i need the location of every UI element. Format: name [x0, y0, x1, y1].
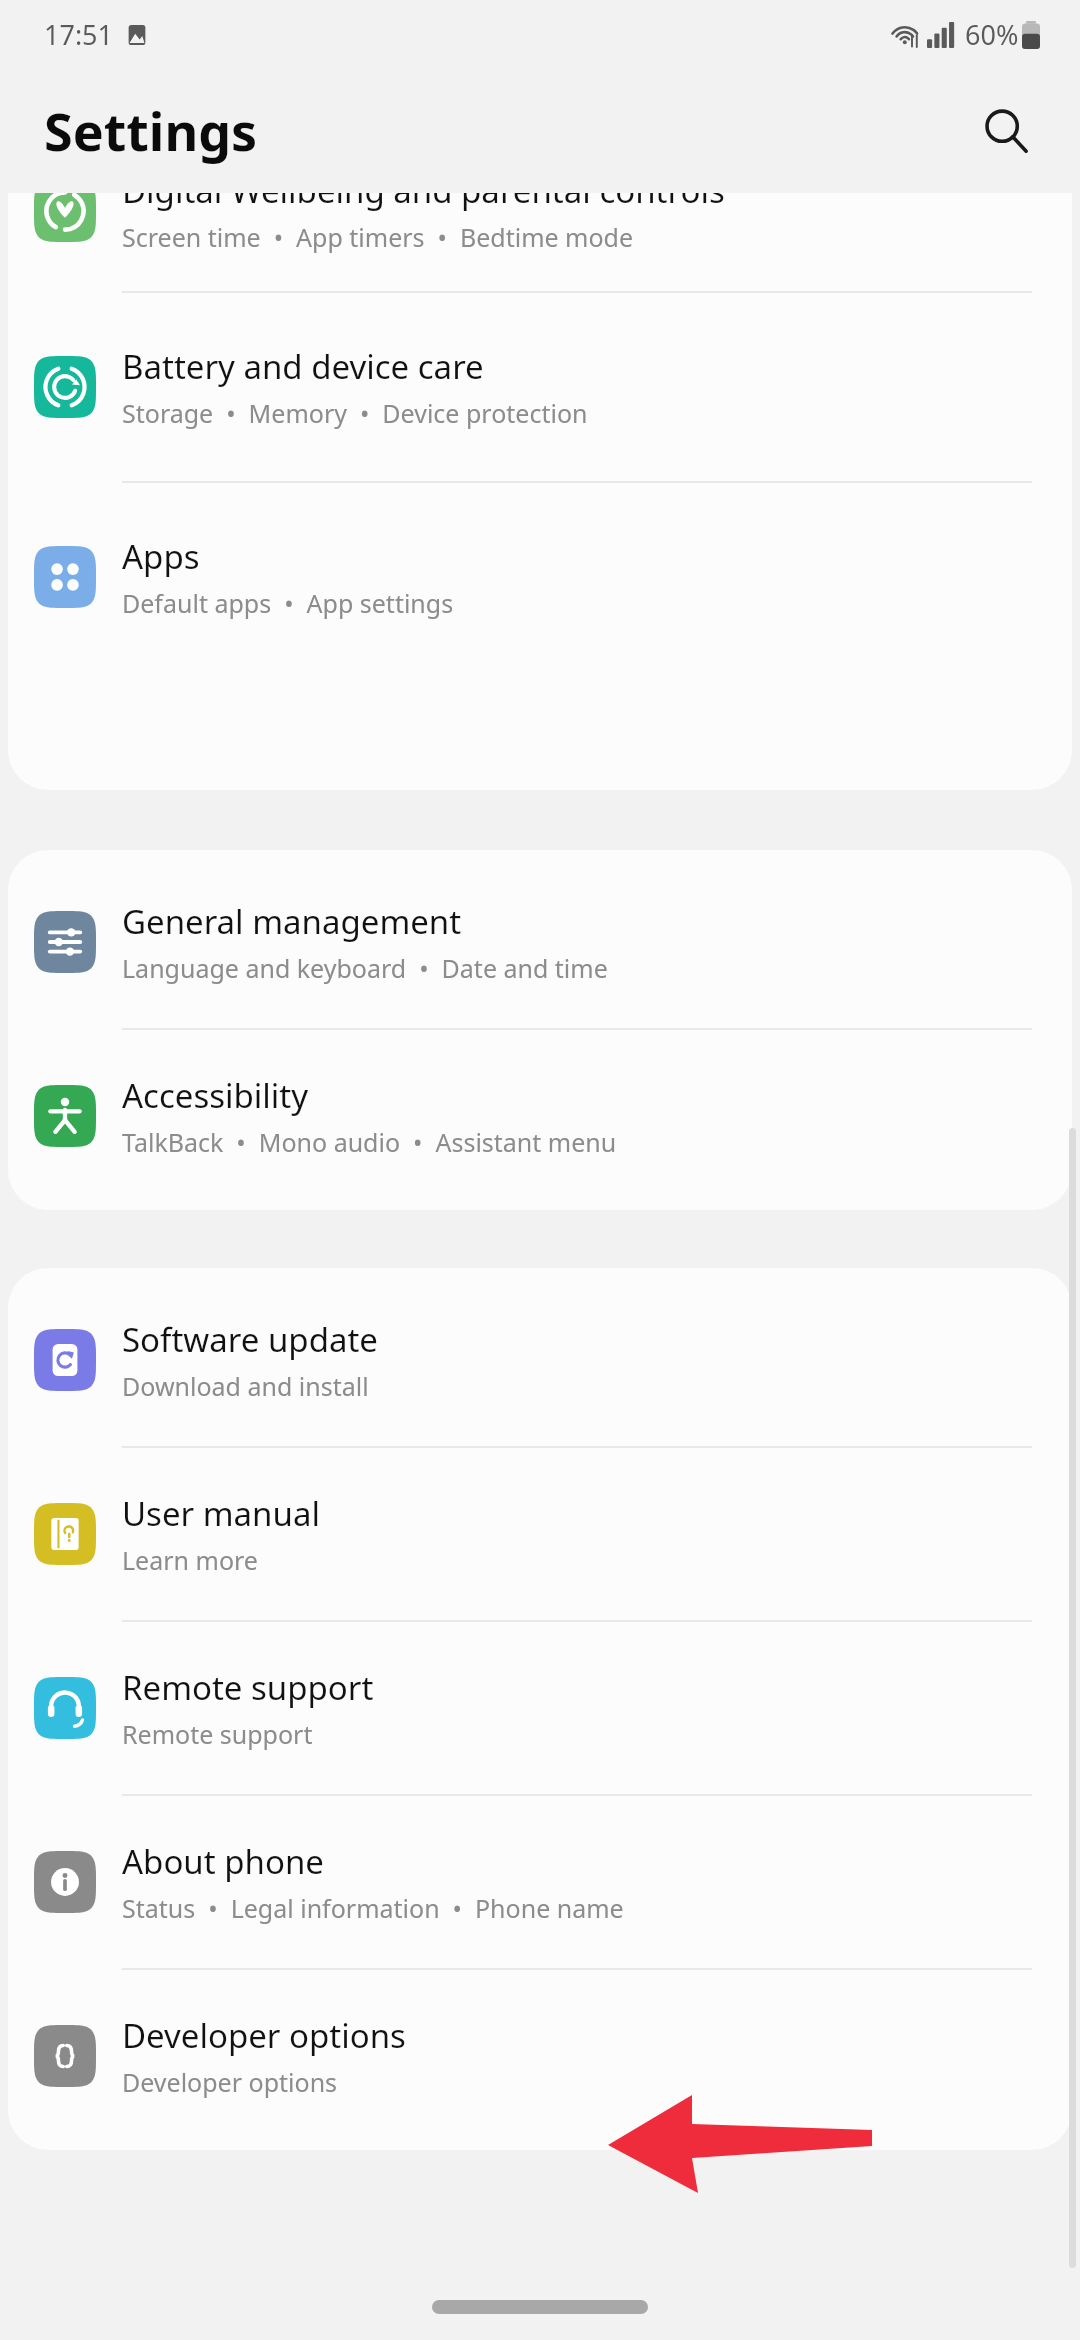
staticText: Language and keyboard • Date and time [122, 951, 608, 985]
button[interactable]: Battery and device care [8, 293, 1072, 481]
button[interactable]: General management [8, 856, 1072, 1028]
button[interactable]: Digital Wellbeing and parental controls [8, 193, 1072, 291]
staticText: About phone [122, 1839, 324, 1884]
staticText: TalkBack • Mono audio • Assistant menu [122, 1125, 617, 1159]
staticText: Download and install [122, 1369, 369, 1403]
staticText: 17:51 [44, 16, 114, 53]
staticText: General management [122, 899, 462, 944]
staticText: Digital Wellbeing and parental controls [122, 193, 725, 213]
staticText: Battery and device care [122, 344, 484, 389]
button[interactable]: Accessibility [8, 1030, 1072, 1202]
staticText: Screen time • App timers • Bedtime mode [122, 220, 634, 254]
button[interactable]: Software update [8, 1274, 1072, 1446]
staticText: 60% [965, 16, 1019, 53]
staticText: Settings [44, 95, 258, 166]
staticText: Remote support [122, 1665, 374, 1710]
button[interactable]: Apps [8, 483, 1072, 671]
button[interactable]: About phone [8, 1796, 1072, 1968]
staticText: Storage • Memory • Device protection [122, 396, 588, 430]
staticText: Software update [122, 1317, 378, 1362]
staticText: Developer options [122, 2065, 338, 2099]
staticText: Remote support [122, 1717, 313, 1751]
staticText: Status • Legal information • Phone name [122, 1891, 624, 1925]
button[interactable]: Search [960, 85, 1052, 177]
button[interactable]: Developer options [8, 1970, 1072, 2142]
staticText: Learn more [122, 1543, 258, 1577]
staticText: Accessibility [122, 1073, 309, 1118]
button[interactable]: Remote support [8, 1622, 1072, 1794]
staticText: Developer options [122, 2013, 406, 2058]
staticText: Default apps • App settings [122, 586, 454, 620]
staticText: Apps [122, 534, 200, 579]
button[interactable]: User manual [8, 1448, 1072, 1620]
staticText: User manual [122, 1491, 320, 1536]
